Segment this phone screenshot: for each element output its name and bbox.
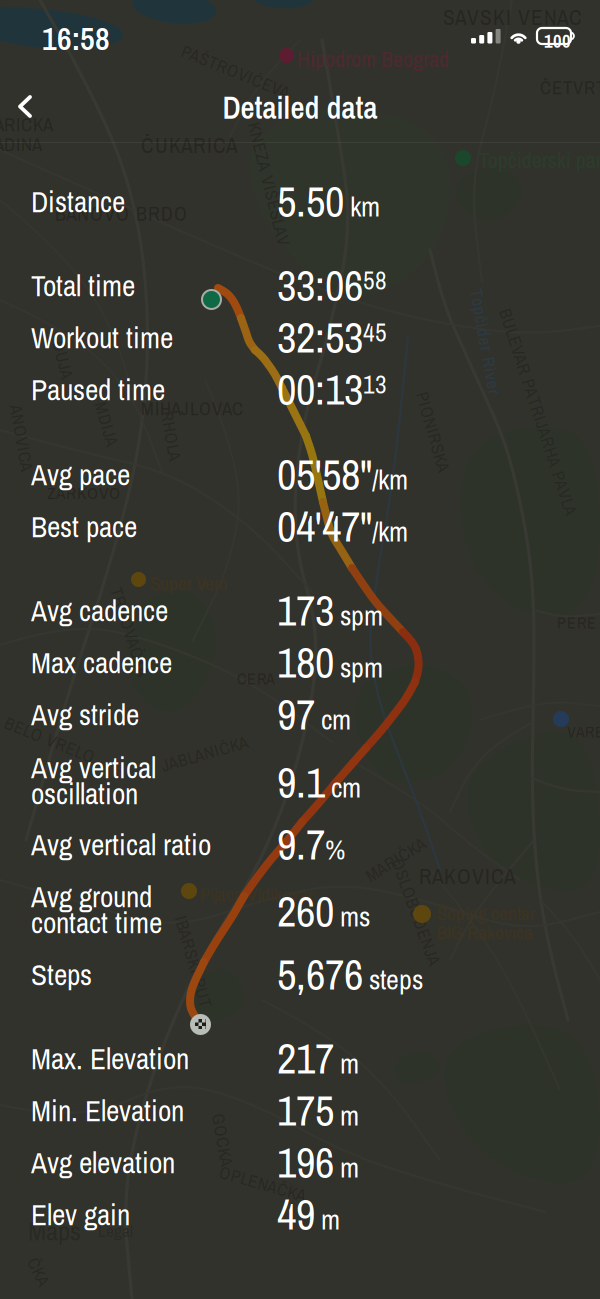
staticText: contact time: [31, 903, 162, 942]
staticText: Avg ground: [31, 877, 152, 916]
staticText: M I H A J L O V A C: [141, 396, 243, 421]
staticText: BIG Rakovica: [437, 920, 533, 945]
staticText: Avg cadence: [31, 591, 168, 630]
staticText: I B A R S K I P U T: [146, 950, 241, 973]
staticText: S A V S K I V E N A C: [443, 3, 582, 32]
staticText: C E R A: [237, 668, 275, 690]
staticText: Č E T V R T I: [540, 75, 600, 100]
staticText: Šoping centar: [437, 901, 535, 926]
staticText: 16:58: [42, 17, 110, 60]
button[interactable]: Back: [0, 76, 56, 138]
staticText: 217 m: [277, 1030, 359, 1086]
staticText: 97 cm: [277, 686, 351, 742]
staticText: Maps: [28, 1213, 81, 1249]
staticText: Detailed data: [222, 87, 377, 128]
staticText: Steps: [31, 955, 92, 994]
staticText: Č K A: [24, 1260, 53, 1283]
staticText: O P L E N A Č K A: [218, 1172, 307, 1195]
staticText: Paused time: [31, 370, 165, 409]
staticText: 49 m: [277, 1186, 340, 1242]
staticText: Avg pace: [31, 455, 130, 494]
staticText: A D I N A: [0, 132, 42, 157]
staticText: Pijaca Vidikovac: [200, 882, 316, 907]
staticText: 175 m: [277, 1082, 359, 1138]
staticText: O S L O B O Đ E N J A: [360, 900, 472, 923]
staticText: Ž A R K O V O: [47, 481, 120, 504]
staticText: 04'47"/km: [277, 498, 408, 554]
staticText: Topčiderski park: [479, 146, 600, 175]
staticText: 180 spm: [277, 634, 383, 690]
staticText: Distance: [31, 182, 125, 221]
staticText: 260 ms: [277, 883, 370, 939]
staticText: Garden Center: [8, 908, 112, 933]
staticText: Max cadence: [31, 643, 172, 682]
staticText: Avg vertical ratio: [31, 825, 211, 864]
staticText: Best pace: [31, 507, 137, 546]
staticText: Elev gain: [31, 1195, 130, 1234]
staticText: Avg stride: [31, 695, 139, 734]
staticText: 05'58"/km: [277, 446, 408, 502]
staticText: J A B L A N I Č K A: [160, 742, 249, 765]
staticText: 9.7%: [277, 816, 345, 872]
staticText: R A K O V I C A: [419, 862, 516, 891]
staticText: Max. Elevation: [31, 1039, 189, 1078]
staticText: 5.50 km: [277, 173, 380, 229]
staticText: Č U K A R I C A: [141, 131, 238, 160]
staticText: A R I C K A: [0, 112, 53, 137]
staticText: 33:0658: [277, 257, 387, 313]
staticText: M A R I Č K A: [362, 848, 429, 871]
staticText: 9.1 cm: [277, 754, 361, 810]
staticText: Avg vertical: [31, 748, 156, 787]
staticText: V A R E: [567, 721, 600, 743]
staticText: Total time: [31, 266, 135, 305]
staticText: oscillation: [31, 774, 138, 813]
staticText: K N E Z A V I Š E S L A V: [206, 172, 332, 195]
staticText: Legal: [98, 1219, 133, 1242]
staticText: 32:5345: [277, 309, 387, 365]
staticText: 5,676 steps: [277, 946, 423, 1002]
staticText: T R G O V A Č K A: [84, 620, 176, 643]
staticText: D U J A: [44, 348, 82, 371]
staticText: 196 m: [277, 1134, 359, 1190]
staticText: Hipodrom Beograd: [297, 45, 449, 74]
staticText: 00:1313: [277, 361, 387, 417]
staticText: B A N O V O B R D O: [55, 200, 187, 227]
staticText: P E R E: [557, 612, 596, 634]
staticText: P I O N I R S K A: [392, 420, 474, 443]
staticText: Avg elevation: [31, 1143, 175, 1182]
staticText: 100: [544, 28, 571, 54]
staticText: Workout time: [31, 318, 173, 357]
staticText: P A Š T R O V I Ć E V A: [178, 60, 293, 83]
staticText: B E L O V R E L O: [2, 728, 97, 751]
staticText: Min. Elevation: [31, 1091, 184, 1130]
staticText: 173 spm: [277, 582, 383, 638]
staticText: T o p č i d e r R i v e r: [432, 330, 539, 353]
staticText: Super Vero: [150, 571, 228, 596]
